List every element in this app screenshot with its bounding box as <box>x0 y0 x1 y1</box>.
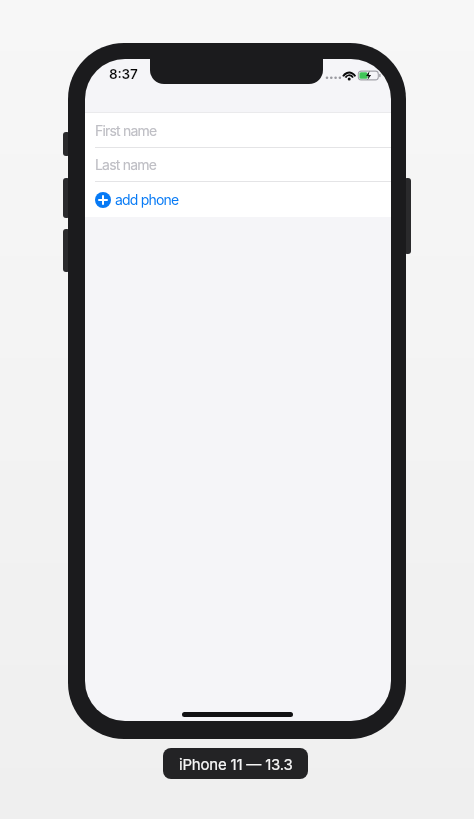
button[interactable]: Last name <box>85 148 391 181</box>
button[interactable]: add phone <box>85 182 391 217</box>
staticText: Last name <box>95 156 157 173</box>
staticText: iPhone 11 — 13.3 <box>179 755 293 773</box>
staticText: add phone <box>115 191 179 208</box>
button[interactable]: iPhone 11 — 13.3 <box>163 748 308 779</box>
button[interactable]: First name <box>85 113 391 147</box>
staticText: First name <box>95 122 157 139</box>
staticText: 8:37 <box>109 66 138 82</box>
